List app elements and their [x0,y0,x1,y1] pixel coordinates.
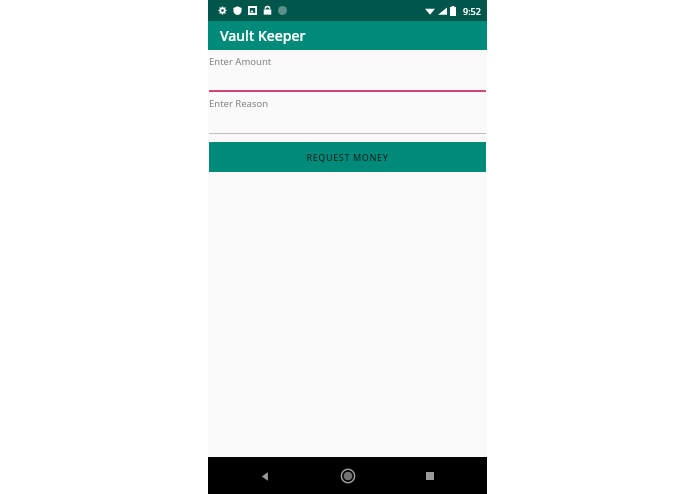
staticText: REQUEST MONEY [306,151,389,163]
staticText: Enter Reason [209,97,269,110]
button[interactable]: Home [331,459,365,493]
button[interactable]: Back [248,459,282,493]
staticText: 9:52 [463,5,481,17]
staticText: Vault Keeper [220,26,306,45]
button[interactable]: Recent apps [413,459,447,493]
staticText: Enter Amount [209,55,272,68]
button[interactable]: Enter Reason [208,97,487,134]
button[interactable]: REQUEST MONEY [209,142,486,172]
button[interactable]: Enter Amount [208,55,487,92]
